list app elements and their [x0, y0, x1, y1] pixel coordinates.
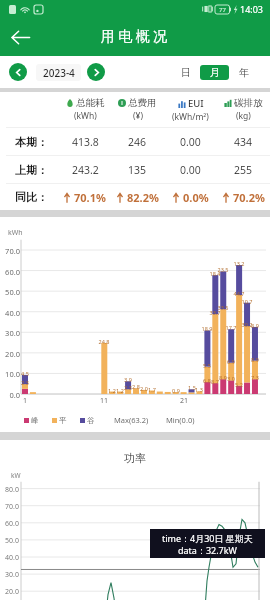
staticText: 70.2% [233, 190, 265, 205]
staticText: 3.0 [222, 375, 240, 382]
staticText: 60.0 [0, 519, 19, 529]
staticText: 4.5 [16, 370, 34, 377]
staticText: 8.9 [214, 374, 232, 381]
staticText: 碳排放 [234, 97, 263, 109]
staticText: 33.5 [214, 304, 232, 311]
staticText: 月 [210, 66, 220, 79]
staticText: 本期： [15, 135, 48, 149]
staticText: (kWh) [74, 110, 97, 122]
staticText: kWh [8, 228, 23, 238]
staticText: 18.9 [198, 325, 216, 332]
staticText: 0.0% [183, 190, 209, 205]
staticText: 1.3 [190, 386, 208, 393]
staticText: 6.8 [198, 377, 216, 384]
staticText: 23.5 [214, 266, 232, 273]
staticText: 82.2% [127, 190, 159, 205]
staticText: 413.8 [72, 135, 99, 149]
staticText: 77 [219, 6, 226, 14]
button[interactable]: Back [4, 21, 36, 53]
staticText: 0.00 [180, 135, 201, 149]
staticText: 70.0 [0, 502, 19, 512]
staticText: 用电概况 [99, 28, 169, 46]
staticText: 13.2 [230, 260, 248, 267]
button[interactable]: 日 [171, 65, 200, 80]
staticText: EUI [188, 97, 204, 110]
staticText: 30.0 [0, 570, 19, 580]
staticText: 10.7 [238, 298, 256, 305]
staticText: 8.9 [246, 356, 264, 363]
staticText: kW [11, 471, 21, 480]
staticText: 20.0 [0, 349, 20, 359]
button[interactable]: Previous month [9, 63, 27, 81]
staticText: 2.3 [16, 379, 34, 386]
staticText: 总费用 [128, 97, 157, 109]
staticText: 243.2 [72, 163, 99, 177]
staticText: (kWh/m²) [172, 111, 209, 123]
staticText: Min(0.0) [166, 415, 195, 425]
staticText: 0.00 [180, 163, 201, 177]
staticText: 1.2 [111, 387, 129, 394]
staticText: 谷 [87, 416, 95, 425]
staticText: 33.7 [206, 309, 224, 316]
staticText: (¥) [133, 110, 143, 122]
staticText: 70.0 [0, 246, 20, 256]
staticText: time：4月30日 星期天 [162, 532, 253, 544]
staticText: 峰 [31, 416, 39, 425]
staticText: 同比： [15, 190, 48, 204]
staticText: 30.2 [238, 321, 256, 328]
button[interactable]: 2023-4 [36, 64, 81, 81]
staticText: 0.9 [167, 387, 185, 394]
staticText: 1 [18, 396, 32, 406]
staticText: (kg) [236, 110, 251, 122]
staticText: 日 [181, 66, 191, 79]
staticText: 0.0 [0, 390, 20, 400]
staticText: 2.0 [135, 385, 153, 392]
staticText: 3.9 [119, 376, 137, 383]
staticText: 5.5 [198, 362, 216, 369]
staticText: 10.0 [0, 369, 20, 379]
staticText: data：32.7kW [178, 544, 237, 556]
staticText: 2.3 [119, 384, 137, 391]
staticText: 40.0 [0, 553, 19, 563]
staticText: Max(63.2) [114, 415, 149, 425]
staticText: 17.7 [222, 324, 240, 331]
staticText: 30.0 [0, 328, 20, 338]
staticText: 2.8 [127, 383, 145, 390]
staticText: 40.0 [0, 308, 20, 318]
staticText: 50.0 [0, 287, 20, 297]
staticText: 14:03 [240, 3, 264, 15]
staticText: 255 [234, 163, 253, 177]
button[interactable]: 年 [229, 65, 258, 80]
staticText: 1.5 [183, 384, 201, 391]
button[interactable]: Next month [87, 63, 105, 81]
staticText: 246 [128, 135, 147, 149]
staticText: 6.9 [222, 358, 240, 365]
staticText: 80.0 [0, 485, 19, 495]
staticText: 60.0 [0, 267, 20, 277]
staticText: 18.4 [206, 270, 224, 277]
staticText: 上期： [15, 163, 48, 177]
staticText: 8.7 [206, 378, 224, 385]
button[interactable]: 月 [200, 65, 229, 80]
staticText: 50.0 [0, 536, 19, 546]
staticText: 1.2 [103, 387, 121, 394]
staticText: 44.7 [230, 290, 248, 297]
staticText: 2023-4 [43, 66, 75, 80]
staticText: 8.9 [246, 322, 264, 329]
staticText: 5.2 [230, 381, 248, 388]
staticText: 24.8 [95, 338, 113, 345]
staticText: 20.0 [0, 587, 19, 597]
staticText: 7.3 [246, 374, 264, 381]
staticText: 1.7 [143, 386, 161, 393]
staticText: 总能耗 [76, 97, 105, 109]
staticText: 21 [177, 396, 191, 406]
staticText: 功率 [124, 451, 146, 465]
staticText: 135 [128, 163, 147, 177]
staticText: 平 [59, 416, 67, 425]
staticText: 年 [239, 66, 249, 79]
staticText: 70.1% [74, 190, 106, 205]
staticText: 11 [97, 396, 111, 406]
staticText: 434 [234, 135, 253, 149]
